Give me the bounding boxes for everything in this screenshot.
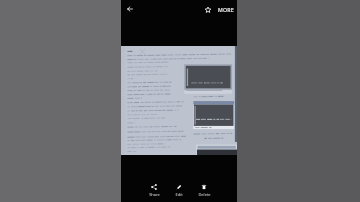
staticText: Share	[149, 192, 160, 197]
staticText: Edit	[175, 192, 183, 197]
button[interactable]: MORE	[217, 3, 235, 16]
button[interactable]: Edit	[172, 182, 186, 199]
button[interactable]: Delete	[197, 182, 211, 199]
staticText: Delete	[198, 192, 211, 197]
button[interactable]: Favorite	[202, 4, 213, 15]
staticText: MORE	[218, 6, 234, 13]
button[interactable]: Back	[124, 3, 136, 15]
button[interactable]: Share	[147, 182, 161, 199]
